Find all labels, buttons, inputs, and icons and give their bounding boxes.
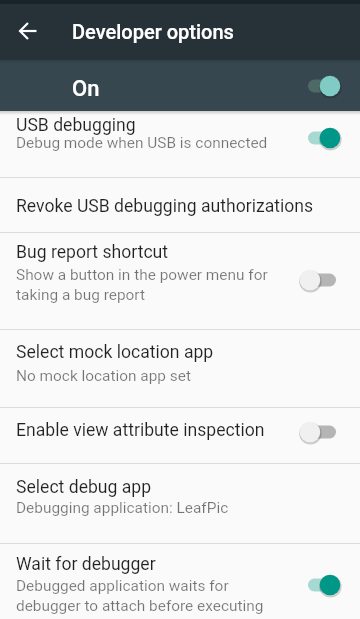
- button[interactable]: Select debug app: [0, 464, 360, 544]
- staticText: Developer options: [72, 20, 234, 43]
- staticText: Wait for debugger: [16, 554, 156, 575]
- staticText: Debug mode when USB is connected: [16, 134, 268, 152]
- staticText: Enable view attribute inspection: [16, 420, 265, 441]
- staticText: Show a button in the power menu for taki…: [16, 266, 268, 304]
- button[interactable]: [19, 22, 37, 40]
- staticText: USB debugging: [16, 115, 136, 136]
- button[interactable]: Wait for debugger: [0, 544, 360, 619]
- button[interactable]: Select mock location app: [0, 330, 360, 408]
- staticText: Bug report shortcut: [16, 242, 169, 263]
- staticText: Select mock location app: [16, 342, 214, 363]
- button[interactable]: Bug report shortcut: [0, 233, 360, 330]
- button[interactable]: On: [0, 60, 360, 111]
- staticText: Select debug app: [16, 477, 152, 498]
- staticText: No mock location app set: [16, 367, 191, 385]
- staticText: Debugged application waits for debugger …: [16, 577, 264, 615]
- staticText: Revoke USB debugging authorizations: [16, 196, 314, 217]
- button[interactable]: Enable view attribute inspection: [0, 408, 360, 464]
- staticText: Debugging application: LeafPic: [16, 499, 229, 517]
- button[interactable]: USB debugging: [0, 111, 360, 178]
- button[interactable]: Revoke USB debugging authorizations: [0, 178, 360, 233]
- staticText: On: [72, 76, 100, 102]
